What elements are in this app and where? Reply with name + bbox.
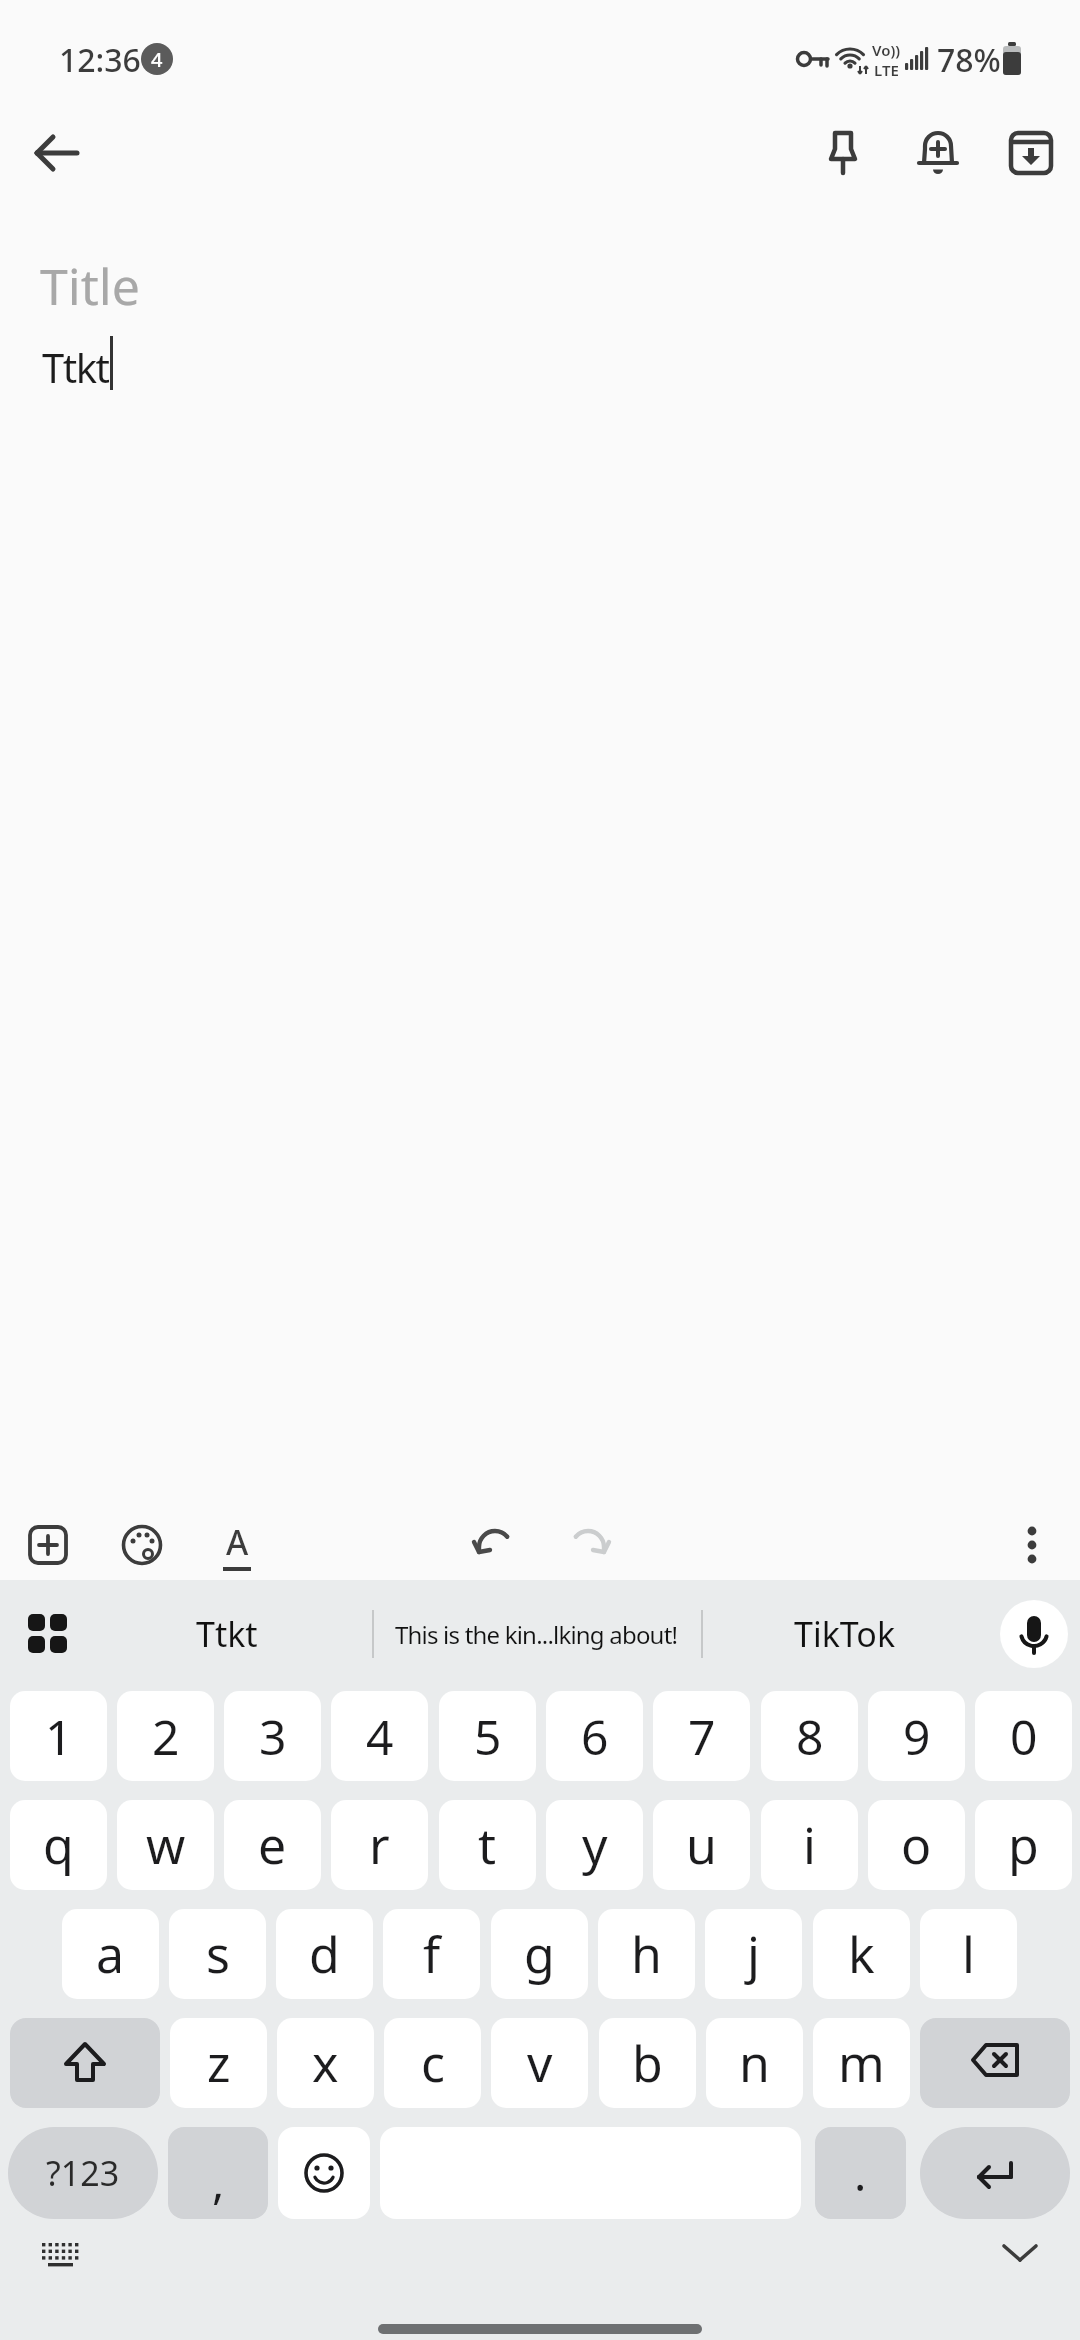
button[interactable]: t: [439, 1800, 536, 1890]
button[interactable]: r: [331, 1800, 428, 1890]
button[interactable]: [22, 118, 92, 188]
button[interactable]: [990, 2222, 1050, 2282]
staticText: 4: [366, 1704, 394, 1769]
button[interactable]: [10, 2018, 160, 2108]
button[interactable]: e: [224, 1800, 321, 1890]
button[interactable]: c: [384, 2018, 481, 2108]
button[interactable]: [920, 2018, 1070, 2108]
staticText: j: [747, 1920, 760, 1988]
button[interactable]: b: [599, 2018, 696, 2108]
staticText: .: [854, 2142, 867, 2205]
button[interactable]: [996, 118, 1066, 188]
staticText: h: [631, 1920, 662, 1988]
staticText: This is the kin...lking about!: [395, 1618, 678, 1651]
staticText: 12:36: [59, 38, 141, 80]
button[interactable]: a: [62, 1909, 159, 1999]
button[interactable]: [18, 1604, 78, 1664]
staticText: ?123: [46, 2150, 120, 2196]
button[interactable]: 7: [653, 1691, 750, 1781]
button[interactable]: [30, 2226, 90, 2286]
staticText: y: [582, 1811, 608, 1879]
button[interactable]: j: [705, 1909, 802, 1999]
staticText: t: [478, 1811, 497, 1879]
button[interactable]: 0: [975, 1691, 1072, 1781]
button[interactable]: [278, 2127, 370, 2219]
button[interactable]: d: [276, 1909, 373, 1999]
button[interactable]: ,: [168, 2127, 268, 2219]
button[interactable]: TikTok: [760, 1604, 930, 1664]
button[interactable]: [556, 1513, 620, 1577]
staticText: o: [901, 1811, 932, 1879]
staticText: 7: [688, 1704, 716, 1769]
staticText: Ttkt: [196, 1611, 258, 1657]
staticText: 78%: [937, 38, 1001, 80]
button[interactable]: x: [277, 2018, 374, 2108]
staticText: g: [524, 1920, 555, 1988]
staticText: x: [312, 2029, 339, 2097]
button[interactable]: [920, 2127, 1070, 2219]
staticText: 1: [45, 1704, 73, 1769]
staticText: 8: [796, 1704, 824, 1769]
button[interactable]: 3: [224, 1691, 321, 1781]
button[interactable]: u: [653, 1800, 750, 1890]
button[interactable]: Ttkt: [150, 1604, 304, 1664]
staticText: k: [848, 1920, 875, 1988]
button[interactable]: m: [813, 2018, 910, 2108]
button[interactable]: h: [598, 1909, 695, 1999]
staticText: Vo)): [872, 40, 901, 60]
button[interactable]: w: [117, 1800, 214, 1890]
button[interactable]: 5: [439, 1691, 536, 1781]
button[interactable]: [110, 1513, 174, 1577]
button[interactable]: 4: [331, 1691, 428, 1781]
button[interactable]: [463, 1513, 527, 1577]
staticText: 0: [1010, 1704, 1038, 1769]
staticText: a: [96, 1920, 125, 1988]
button[interactable]: .: [815, 2127, 906, 2219]
button[interactable]: f: [383, 1909, 480, 1999]
staticText: b: [632, 2029, 663, 2097]
staticText: 6: [581, 1704, 609, 1769]
button[interactable]: ?123: [8, 2127, 158, 2219]
button[interactable]: o: [868, 1800, 965, 1890]
staticText: v: [527, 2029, 553, 2097]
button[interactable]: 1: [10, 1691, 107, 1781]
button[interactable]: [808, 118, 878, 188]
button[interactable]: s: [169, 1909, 266, 1999]
button[interactable]: [16, 1513, 80, 1577]
staticText: z: [207, 2029, 231, 2097]
staticText: m: [838, 2029, 885, 2097]
button[interactable]: 8: [761, 1691, 858, 1781]
staticText: 2: [152, 1704, 180, 1769]
button[interactable]: This is the kin...lking about!: [380, 1604, 692, 1664]
button[interactable]: q: [10, 1800, 107, 1890]
button[interactable]: z: [170, 2018, 267, 2108]
staticText: c: [421, 2029, 445, 2097]
button[interactable]: A: [205, 1513, 269, 1577]
staticText: 5: [474, 1704, 502, 1769]
button[interactable]: l: [920, 1909, 1017, 1999]
staticText: Title: [40, 252, 140, 320]
staticText: q: [43, 1811, 74, 1879]
button[interactable]: [1000, 1600, 1068, 1668]
button[interactable]: 6: [546, 1691, 643, 1781]
button[interactable]: [903, 118, 973, 188]
button[interactable]: p: [975, 1800, 1072, 1890]
staticText: u: [686, 1811, 717, 1879]
staticText: f: [423, 1920, 441, 1988]
button[interactable]: g: [491, 1909, 588, 1999]
button[interactable]: [1000, 1513, 1064, 1577]
staticText: d: [309, 1920, 340, 1988]
button[interactable]: 2: [117, 1691, 214, 1781]
button[interactable]: v: [491, 2018, 588, 2108]
staticText: 9: [903, 1704, 931, 1769]
staticText: r: [369, 1811, 390, 1879]
button[interactable]: 9: [868, 1691, 965, 1781]
staticText: i: [803, 1811, 816, 1879]
button[interactable]: i: [761, 1800, 858, 1890]
button[interactable]: n: [706, 2018, 803, 2108]
staticText: n: [739, 2029, 770, 2097]
button[interactable]: k: [813, 1909, 910, 1999]
button[interactable]: y: [546, 1800, 643, 1890]
staticText: TikTok: [794, 1611, 896, 1657]
